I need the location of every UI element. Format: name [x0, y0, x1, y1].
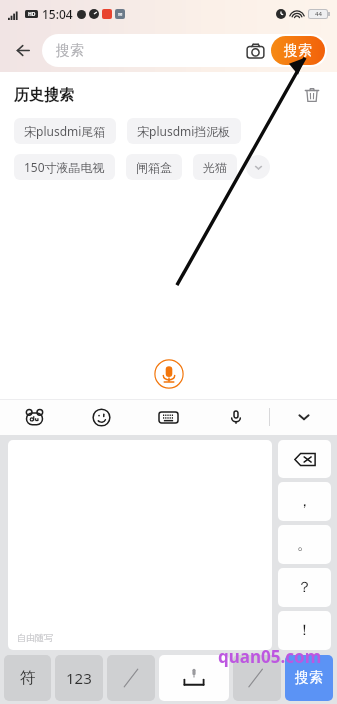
staticText: 123 — [66, 668, 92, 688]
button[interactable]: Backspace — [278, 440, 331, 478]
button[interactable] — [107, 655, 155, 701]
staticText: 搜索 — [284, 42, 312, 60]
button[interactable]: 搜索 — [42, 34, 327, 67]
button[interactable] — [233, 655, 281, 701]
staticText: quan05.com — [218, 645, 322, 668]
button[interactable]: Baidu logo — [0, 399, 68, 435]
staticText: 宋plusdmi挡泥板 — [137, 123, 231, 139]
staticText: 宋plusdmi尾箱 — [24, 123, 106, 139]
staticText: 15:04 — [42, 6, 73, 22]
staticText: 历史搜索 — [14, 86, 74, 105]
button[interactable]: 150寸液晶电视 — [14, 154, 115, 180]
button[interactable]: 。 — [278, 525, 331, 564]
button[interactable]: ， — [278, 482, 331, 521]
button[interactable]: 闸箱盒 — [126, 154, 182, 180]
button[interactable]: Voice search — [152, 357, 186, 391]
button[interactable]: 宋plusdmi尾箱 — [14, 118, 116, 144]
button[interactable]: Voice input — [202, 399, 269, 435]
staticText: ？ — [297, 578, 312, 597]
staticText: HD — [28, 11, 36, 18]
button[interactable]: Keyboard — [135, 399, 202, 435]
button[interactable]: 搜索 — [271, 36, 325, 65]
button[interactable]: Hide keyboard — [270, 399, 337, 435]
button[interactable]: 符 — [4, 655, 51, 701]
button[interactable]: Camera search — [242, 38, 268, 64]
button[interactable]: 宋plusdmi挡泥板 — [127, 118, 241, 144]
staticText: ！ — [297, 621, 312, 640]
staticText: ✉ — [118, 11, 123, 17]
button[interactable]: Back — [6, 33, 40, 67]
staticText: 搜索 — [56, 42, 84, 60]
staticText: 闸箱盒 — [136, 160, 172, 175]
staticText: 44 — [315, 10, 322, 18]
button[interactable]: 光猫 — [193, 154, 237, 180]
button[interactable]: Emoji — [68, 399, 135, 435]
staticText: 。 — [297, 535, 312, 554]
staticText: 符 — [20, 668, 36, 688]
staticText: 搜索 — [295, 669, 323, 687]
staticText: 自由随写 — [17, 632, 53, 643]
button[interactable]: 搜索 — [285, 655, 333, 701]
staticText: ， — [297, 492, 312, 511]
button[interactable]: 123 — [55, 655, 103, 701]
button[interactable]: ！ — [278, 611, 331, 650]
button[interactable]: Clear history — [299, 82, 325, 108]
button[interactable]: ？ — [278, 568, 331, 607]
staticText: 150寸液晶电视 — [24, 159, 105, 175]
button[interactable]: Space — [159, 655, 229, 701]
staticText: 光猫 — [203, 160, 227, 175]
button[interactable]: Expand — [246, 155, 270, 179]
